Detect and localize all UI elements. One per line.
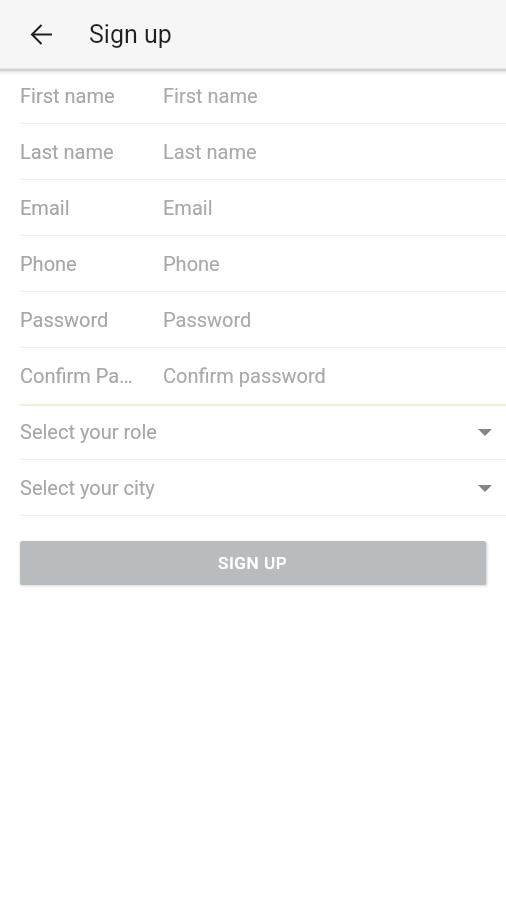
staticText: Confirm password bbox=[163, 364, 326, 387]
button[interactable]: Phone bbox=[0, 236, 506, 292]
staticText: Phone bbox=[20, 252, 133, 275]
staticText: First name bbox=[163, 84, 258, 107]
staticText: Last name bbox=[20, 140, 133, 163]
staticText: Sign up bbox=[89, 20, 172, 49]
staticText: Password bbox=[20, 308, 133, 331]
staticText: Email bbox=[20, 196, 133, 219]
button[interactable]: Password bbox=[0, 292, 506, 348]
staticText: Email bbox=[163, 196, 213, 219]
staticText: Phone bbox=[163, 252, 220, 275]
staticText: Select your role bbox=[20, 420, 157, 443]
button[interactable]: Back bbox=[24, 17, 58, 51]
button[interactable]: Email bbox=[0, 180, 506, 236]
staticText: Select your city bbox=[20, 476, 155, 499]
staticText: Confirm Password bbox=[20, 364, 133, 387]
button[interactable]: First name bbox=[0, 68, 506, 124]
staticText: First name bbox=[20, 84, 133, 107]
button[interactable]: Last name bbox=[0, 124, 506, 180]
button[interactable]: Select your role bbox=[0, 404, 506, 460]
staticText: SIGN UP bbox=[218, 553, 288, 573]
button[interactable]: Select your city bbox=[0, 460, 506, 516]
staticText: Password bbox=[163, 308, 252, 331]
button[interactable]: SIGN UP bbox=[20, 541, 486, 585]
button[interactable]: Confirm Password bbox=[0, 348, 506, 404]
staticText: Last name bbox=[163, 140, 257, 163]
